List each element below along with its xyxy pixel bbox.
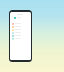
button[interactable]: Status <box>12 16 30 19</box>
button[interactable] <box>12 34 30 37</box>
button[interactable] <box>12 25 30 28</box>
button[interactable] <box>12 31 30 34</box>
button[interactable] <box>12 22 30 25</box>
button[interactable] <box>12 28 30 31</box>
button[interactable] <box>12 37 30 40</box>
